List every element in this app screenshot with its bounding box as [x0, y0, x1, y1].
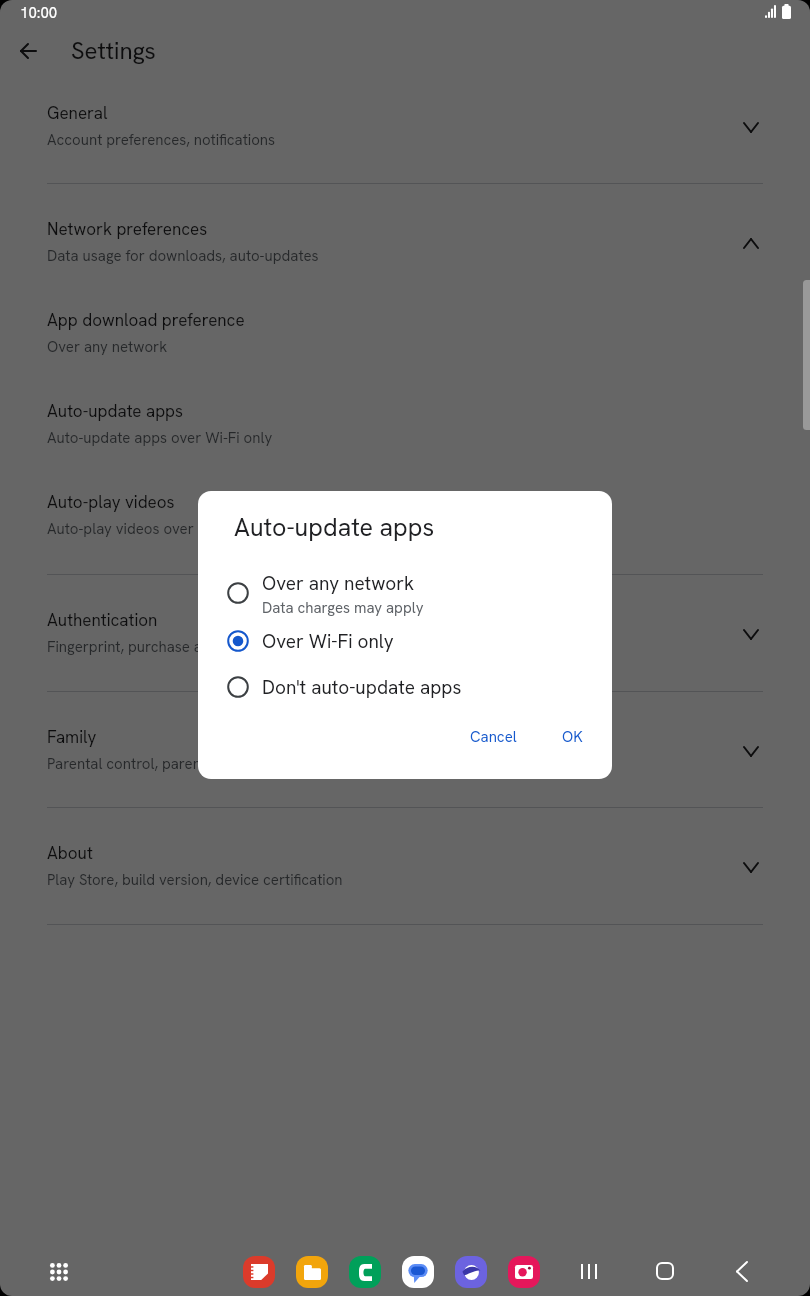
staticText: Auto-play videos	[47, 491, 175, 513]
button[interactable]: Auto-play videos	[0, 483, 810, 574]
button[interactable]: App	[508, 1256, 540, 1288]
button[interactable]: App	[455, 1256, 487, 1288]
button[interactable]: App	[349, 1256, 381, 1288]
staticText: Network preferences	[47, 218, 208, 240]
staticText: Account preferences, notifications	[47, 130, 276, 150]
staticText: Auto-play videos over Wi-Fi only	[47, 519, 265, 539]
staticText: Data usage for downloads, auto-updates	[47, 246, 319, 266]
button[interactable]: Over any network	[198, 567, 612, 619]
button[interactable]: General	[0, 68, 810, 185]
staticText: Fingerprint, purchase approvals	[47, 637, 261, 657]
staticText: Settings	[71, 35, 156, 66]
button[interactable]: All apps	[41, 1254, 77, 1290]
button[interactable]: Cancel	[458, 719, 529, 755]
staticText: Cancel	[470, 727, 517, 747]
button[interactable]: Home	[648, 1254, 682, 1288]
staticText: Data charges may apply	[262, 598, 424, 618]
staticText: Family	[47, 726, 97, 748]
button[interactable]: Network preferences	[0, 184, 810, 301]
staticText: Auto-update apps	[47, 400, 184, 422]
staticText: Play Store, build version, device certif…	[47, 870, 343, 890]
button[interactable]: Back	[9, 32, 46, 69]
button[interactable]: App	[402, 1256, 434, 1288]
button[interactable]: App download preference	[0, 301, 810, 392]
staticText: Auto-update apps over Wi-Fi only	[47, 428, 273, 448]
button[interactable]: App	[296, 1256, 328, 1288]
button[interactable]: Over Wi-Fi only	[198, 624, 612, 658]
button[interactable]: About	[0, 808, 810, 925]
staticText: OK	[562, 727, 583, 747]
button[interactable]: App	[243, 1256, 275, 1288]
button[interactable]: Recents	[572, 1254, 606, 1288]
button[interactable]: Back	[724, 1254, 758, 1288]
button[interactable]: Family	[0, 692, 810, 808]
staticText: General	[47, 102, 108, 124]
staticText: About	[47, 842, 93, 864]
staticText: Auto-update apps	[234, 511, 435, 544]
staticText: Over Wi-Fi only	[262, 629, 394, 654]
staticText: App download preference	[47, 309, 245, 331]
staticText: Over any network	[47, 337, 168, 357]
button[interactable]: OK	[550, 719, 595, 755]
button[interactable]: Auto-update apps	[0, 392, 810, 483]
staticText: Authentication	[47, 609, 158, 631]
staticText: Don't auto-update apps	[262, 675, 462, 700]
staticText: Parental control, parent guide	[47, 754, 247, 774]
button[interactable]: Authentication	[0, 575, 810, 692]
staticText: Over any network	[262, 571, 415, 596]
button[interactable]: Don't auto-update apps	[198, 670, 612, 704]
staticText: 10:00	[20, 3, 58, 23]
